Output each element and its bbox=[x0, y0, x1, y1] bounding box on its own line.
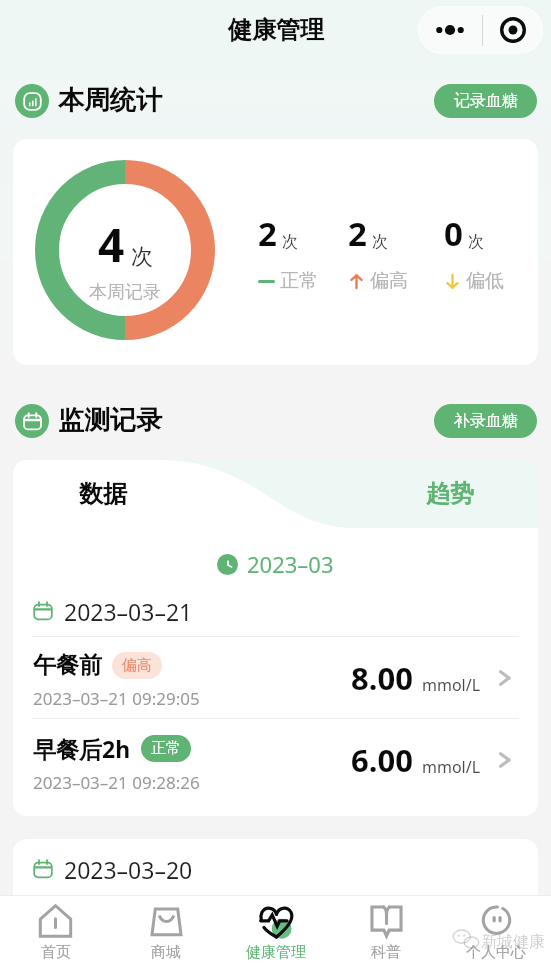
staticText: 0 bbox=[444, 211, 463, 256]
staticText: 商城 bbox=[151, 943, 181, 962]
staticText: 午餐前 bbox=[33, 651, 102, 680]
staticText: 早餐后2h bbox=[33, 733, 131, 764]
staticText: 2023–03–21 09:29:05 bbox=[33, 687, 200, 710]
button[interactable]: 商城 bbox=[111, 896, 221, 966]
staticText: 4 bbox=[98, 213, 125, 276]
staticText: 2023–03–21 09:28:26 bbox=[33, 771, 200, 794]
staticText: 正常 bbox=[280, 269, 318, 293]
button[interactable]: 科普 bbox=[331, 896, 441, 966]
button[interactable]: More options bbox=[418, 6, 482, 54]
button[interactable]: 补录血糖 bbox=[434, 404, 537, 438]
staticText: 次 bbox=[282, 232, 298, 252]
button[interactable]: 首页 bbox=[0, 896, 111, 966]
staticText: 次 bbox=[372, 232, 388, 252]
staticText: 健康管理 bbox=[246, 943, 306, 962]
staticText: mmol/L bbox=[422, 756, 481, 778]
staticText: 首页 bbox=[41, 943, 71, 962]
staticText: 正常 bbox=[151, 739, 181, 758]
staticText: 补录血糖 bbox=[454, 411, 518, 431]
button[interactable]: 健康管理 bbox=[221, 896, 331, 966]
staticText: 2 bbox=[258, 211, 277, 256]
staticText: 偏高 bbox=[122, 656, 152, 675]
button[interactable]: 趋势 bbox=[426, 479, 474, 509]
staticText: 新城健康 bbox=[481, 932, 545, 952]
staticText: 2023–03–20 bbox=[64, 854, 193, 885]
staticText: 科普 bbox=[371, 943, 401, 962]
staticText: 2023–03 bbox=[247, 549, 334, 579]
button[interactable]: 个人中心 bbox=[441, 896, 551, 966]
staticText: 次 bbox=[131, 243, 153, 271]
staticText: 2023–03–21 bbox=[64, 596, 193, 627]
staticText: 本周记录 bbox=[89, 281, 161, 304]
button[interactable]: 数据 bbox=[79, 479, 127, 509]
staticText: 2 bbox=[348, 211, 367, 256]
staticText: 监测记录 bbox=[58, 404, 162, 437]
staticText: 次 bbox=[468, 232, 484, 252]
staticText: 偏低 bbox=[466, 269, 504, 293]
staticText: 记录血糖 bbox=[454, 91, 518, 111]
staticText: 个人中心 bbox=[466, 943, 526, 962]
button[interactable]: 午餐前 bbox=[13, 637, 538, 718]
staticText: mmol/L bbox=[422, 674, 481, 696]
staticText: 6.00 bbox=[351, 739, 413, 781]
staticText: 偏高 bbox=[370, 269, 408, 293]
staticText: 健康管理 bbox=[228, 15, 324, 45]
button[interactable]: 记录血糖 bbox=[434, 84, 537, 118]
button[interactable]: Close mini program bbox=[483, 6, 543, 54]
staticText: 8.00 bbox=[351, 657, 413, 699]
staticText: 本周统计 bbox=[58, 84, 162, 117]
button[interactable]: 早餐后2h bbox=[13, 719, 538, 800]
